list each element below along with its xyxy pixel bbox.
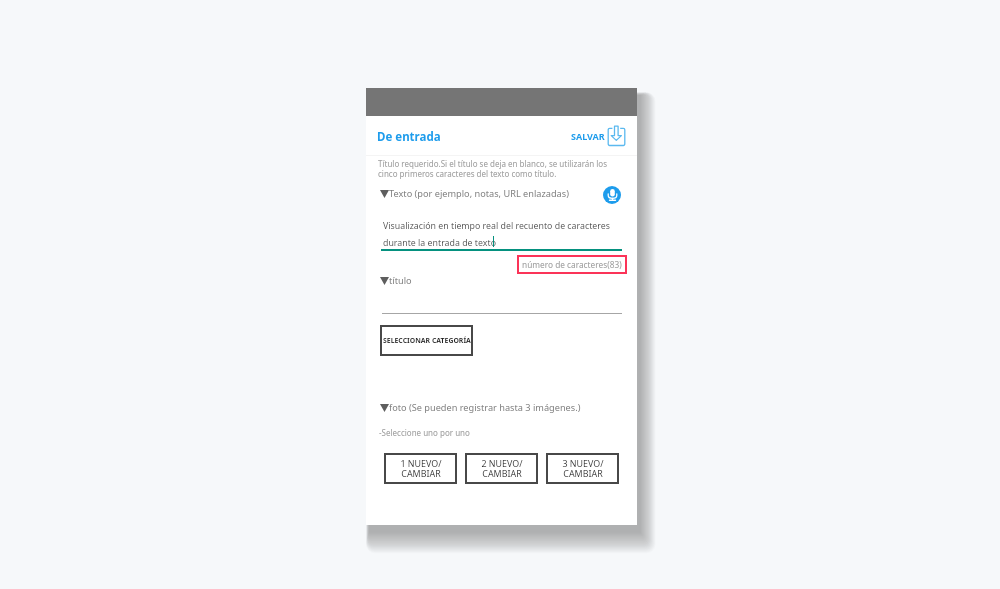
- button[interactable]: SELECCIONAR CATEGORÍA: [380, 325, 473, 356]
- button[interactable]: Save: [604, 123, 629, 148]
- staticText: foto (Se pueden registrar hasta 3 imágen…: [389, 401, 581, 414]
- staticText: Texto (por ejemplo, notas, URL enlazadas…: [389, 187, 569, 200]
- staticText: Visualización en tiempo real del recuent…: [383, 220, 610, 249]
- staticText: Título requerido.Si el título se deja en…: [378, 158, 608, 179]
- button[interactable]: 1 NUEVO/ CAMBIAR: [384, 453, 457, 484]
- button[interactable]: SALVAR: [571, 130, 605, 142]
- button[interactable]: 3 NUEVO/ CAMBIAR: [546, 453, 619, 484]
- button[interactable]: título: [380, 277, 412, 290]
- button[interactable]: número de caracteres(83): [517, 255, 627, 274]
- button[interactable]: foto (Se pueden registrar hasta 3 imágen…: [380, 404, 581, 417]
- staticText: título: [389, 274, 412, 287]
- staticText: número de caracteres(83): [522, 259, 622, 270]
- button[interactable]: De entrada: [377, 129, 441, 145]
- staticText: -Seleccione uno por uno: [379, 427, 470, 438]
- staticText: 3 NUEVO/ CAMBIAR: [562, 457, 604, 480]
- button[interactable]: 2 NUEVO/ CAMBIAR: [465, 453, 538, 484]
- button[interactable]: Voice input: [603, 186, 621, 204]
- staticText: 2 NUEVO/ CAMBIAR: [481, 457, 523, 480]
- staticText: De entrada: [377, 129, 441, 145]
- staticText: SALVAR: [571, 130, 605, 142]
- button[interactable]: Texto (por ejemplo, notas, URL enlazadas…: [380, 190, 569, 203]
- staticText: 1 NUEVO/ CAMBIAR: [400, 457, 442, 480]
- staticText: SELECCIONAR CATEGORÍA: [383, 336, 471, 345]
